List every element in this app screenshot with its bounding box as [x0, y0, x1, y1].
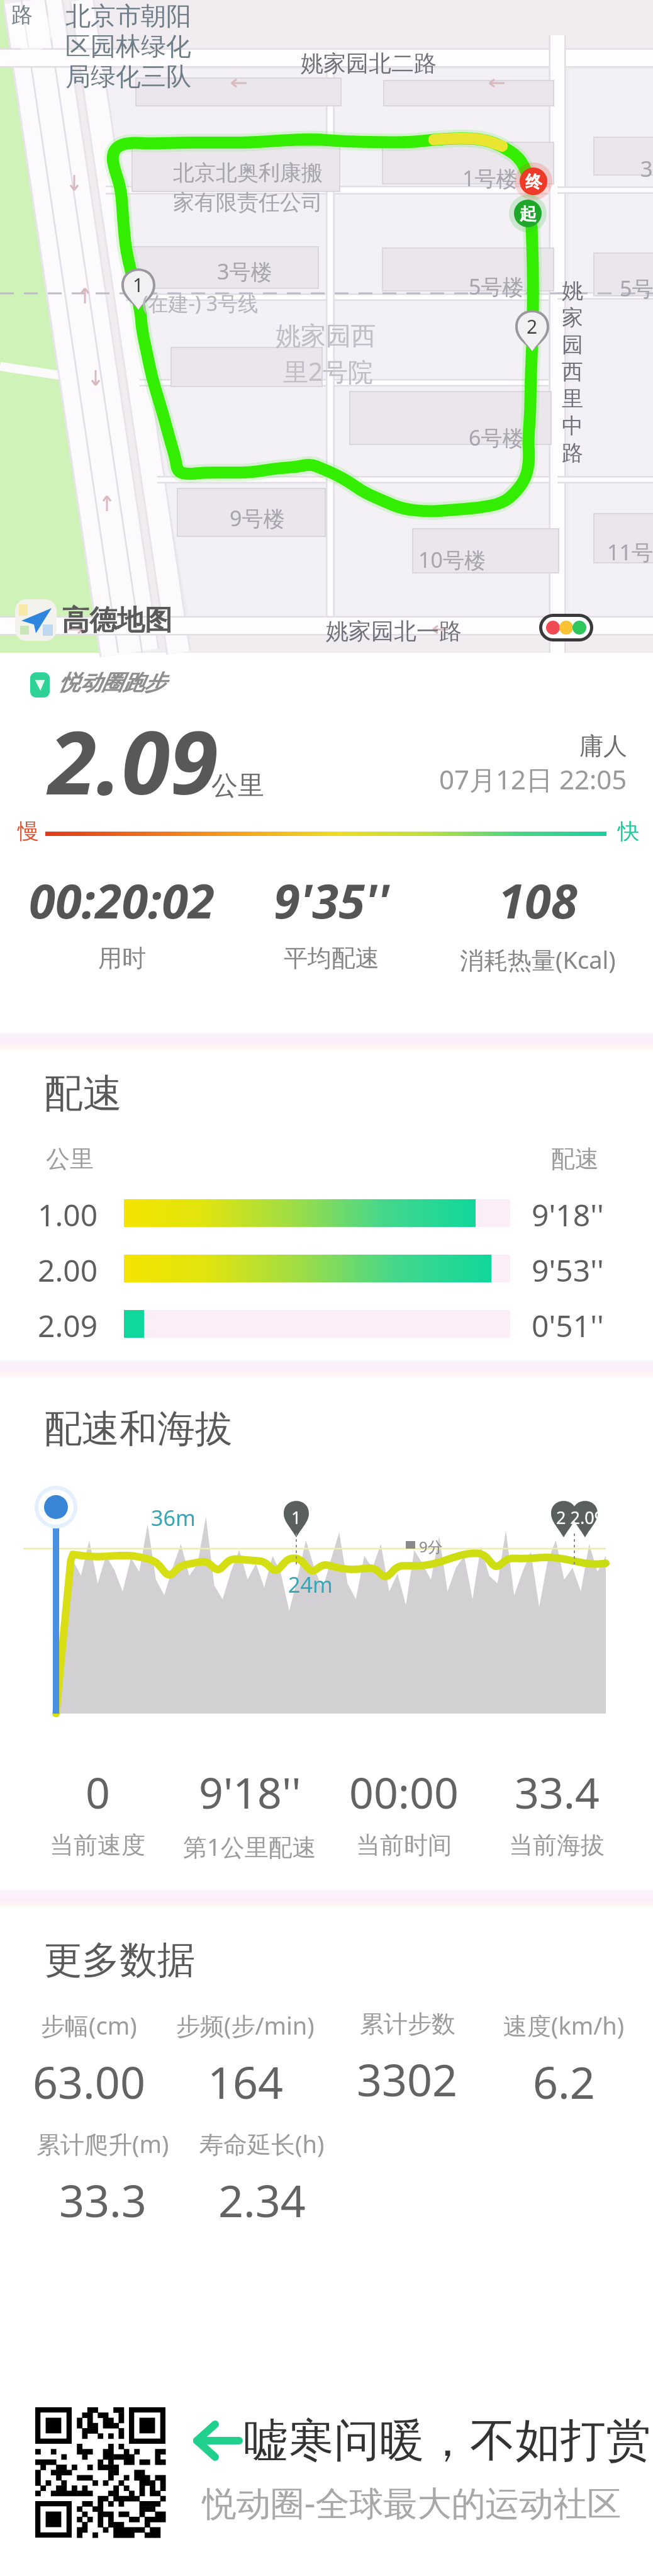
staticText: 姚家园北二路: [301, 49, 437, 77]
staticText: 2.09: [48, 701, 218, 820]
staticText: 108: [498, 867, 578, 933]
staticText: 0'51'': [532, 1305, 604, 1346]
staticText: 北京北奥利康搬: [173, 159, 323, 186]
button[interactable]: 寿命延长(h): [136, 2127, 388, 2230]
staticText: 用时: [98, 943, 146, 973]
staticText: 里2号院: [283, 354, 373, 388]
staticText: 2.09: [38, 1305, 98, 1346]
staticText: 9'18'': [532, 1194, 604, 1235]
staticText: 3302: [357, 2049, 458, 2109]
staticText: 5号: [620, 274, 653, 303]
staticText: 高德地图: [62, 603, 172, 638]
staticText: 164: [208, 2052, 284, 2111]
staticText: 西: [562, 358, 583, 385]
button[interactable]: 0: [0, 1763, 223, 1860]
staticText: 累计爬升(m): [36, 2127, 169, 2160]
staticText: 36m: [151, 1503, 196, 1532]
staticText: 9分: [419, 1536, 443, 1557]
button[interactable]: 速度(km/h): [438, 2009, 653, 2111]
staticText: 配速和海拔: [44, 1405, 233, 1453]
staticText: 9号楼: [230, 504, 285, 533]
button[interactable]: 33.4: [431, 1763, 653, 1860]
staticText: 当前速度: [50, 1830, 145, 1860]
button[interactable]: [25, 1296, 653, 1352]
staticText: 2.00: [38, 1250, 98, 1291]
staticText: 路: [11, 1, 33, 28]
staticText: 更多数据: [44, 1936, 195, 1984]
other: Back: [191, 2425, 239, 2456]
button[interactable]: [25, 1185, 653, 1241]
staticText: 平均配速: [284, 943, 379, 973]
staticText: 路: [562, 439, 583, 466]
staticText: 悦动圈跑步: [59, 669, 165, 696]
staticText: 6号楼: [469, 423, 524, 452]
staticText: 9'53'': [532, 1250, 604, 1291]
staticText: 里: [562, 385, 583, 412]
staticText: 07月12日 22:05: [439, 761, 627, 797]
staticText: 63.00: [33, 2052, 145, 2111]
button[interactable]: 00:20:02: [0, 867, 247, 973]
button[interactable]: 00:00: [278, 1763, 530, 1860]
button[interactable]: 累计爬升(m): [0, 2127, 228, 2230]
staticText: 快: [618, 818, 639, 845]
staticText: 11号: [607, 538, 653, 567]
staticText: 起: [520, 203, 537, 223]
staticText: 姚家园西: [276, 320, 376, 351]
staticText: 家有限责任公司: [173, 189, 323, 216]
staticText: 嘘寒问暖，不如打赏: [243, 2412, 651, 2470]
button[interactable]: 步频(步/min): [120, 2009, 371, 2111]
staticText: 3: [640, 154, 653, 183]
staticText: 区园林绿化: [65, 30, 191, 62]
staticText: 5号楼: [469, 272, 524, 301]
staticText: 当前海拔: [509, 1830, 605, 1860]
staticText: 步幅(cm): [41, 2009, 137, 2042]
button[interactable]: 9'18'': [124, 1763, 376, 1863]
staticText: 2: [527, 314, 538, 334]
staticText: 姚家园北一路: [326, 617, 462, 645]
staticText: 0: [86, 1763, 110, 1821]
staticText: 1.00: [38, 1194, 98, 1235]
staticText: 庸人: [579, 731, 627, 761]
button[interactable]: 累计步数: [281, 2009, 533, 2109]
staticText: 10号楼: [418, 545, 486, 574]
staticText: 园: [562, 331, 583, 358]
staticText: 慢: [18, 818, 39, 845]
staticText: 速度(km/h): [503, 2009, 625, 2042]
staticText: 局绿化三队: [65, 60, 191, 92]
staticText: 33.4: [515, 1763, 600, 1821]
staticText: 9'35'': [274, 867, 389, 933]
staticText: 姚: [562, 277, 583, 304]
staticText: 消耗热量(Kcal): [460, 943, 616, 976]
staticText: 累计步数: [360, 2009, 455, 2039]
staticText: 配速: [44, 1069, 122, 1118]
staticText: 北京市朝阳: [65, 0, 191, 31]
staticText: 00:20:02: [29, 867, 215, 933]
staticText: 寿命延长(h): [199, 2127, 325, 2160]
staticText: 3号楼: [217, 257, 272, 286]
staticText: 家: [562, 304, 583, 331]
staticText: 2 2.09: [556, 1506, 605, 1529]
button[interactable]: [25, 1241, 653, 1296]
staticText: 第1公里配速: [183, 1830, 316, 1863]
staticText: 24m: [288, 1570, 333, 1599]
staticText: 公里: [211, 769, 264, 803]
staticText: 公里: [46, 1144, 94, 1174]
staticText: 6.2: [533, 2052, 595, 2111]
button[interactable]: 步幅(cm): [0, 2009, 215, 2111]
staticText: 1号楼: [462, 164, 518, 193]
staticText: 当前时间: [356, 1830, 452, 1860]
staticText: (在建-) 3号线: [142, 290, 259, 317]
staticText: 33.3: [59, 2170, 147, 2230]
button[interactable]: 路: [0, 0, 653, 653]
staticText: 配速: [551, 1144, 599, 1174]
button[interactable]: 9'35'': [206, 867, 457, 973]
staticText: 00:00: [349, 1763, 459, 1821]
button[interactable]: 悦动圈跑步: [30, 671, 165, 698]
staticText: 步频(步/min): [176, 2009, 315, 2042]
staticText: 悦动圈-全球最大的运动社区: [203, 2479, 622, 2526]
staticText: 中: [562, 412, 583, 439]
staticText: 2.34: [218, 2170, 306, 2230]
staticText: 9'18'': [199, 1763, 301, 1821]
button[interactable]: 108: [412, 867, 653, 976]
staticText: 1: [291, 1506, 301, 1529]
